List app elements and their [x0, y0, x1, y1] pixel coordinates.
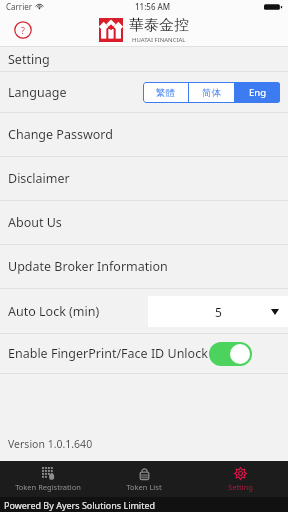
staticText: ?: [21, 24, 25, 36]
button[interactable]: Token List: [96, 461, 192, 497]
button[interactable]: 简体: [189, 82, 234, 103]
staticText: 華泰金控: [129, 16, 189, 35]
button[interactable]: 繁體: [143, 82, 188, 103]
staticText: About Us: [8, 214, 62, 231]
staticText: 简体: [202, 87, 221, 99]
staticText: Setting: [8, 51, 50, 68]
staticText: Language: [8, 84, 67, 101]
staticText: Update Broker Information: [8, 258, 168, 275]
staticText: Token List: [126, 482, 162, 492]
staticText: Disclaimer: [8, 170, 70, 187]
staticText: Version 1.0.1.640: [8, 437, 93, 451]
staticText: 5: [215, 304, 222, 320]
staticText: Enable FingerPrint/Face ID Unlock: [8, 345, 208, 362]
button[interactable]: Disclaimer: [0, 157, 288, 200]
button[interactable]: 5: [148, 296, 288, 327]
staticText: Eng: [249, 86, 266, 99]
button[interactable]: Update Broker Information: [0, 245, 288, 288]
staticText: Change Password: [8, 126, 113, 143]
button[interactable]: Token Registration: [0, 461, 96, 497]
staticText: 繁體: [156, 87, 175, 99]
staticText: Setting: [228, 482, 253, 492]
button[interactable]: Enable FingerPrint or Face ID Unlock: [209, 342, 252, 366]
button[interactable]: Help: [14, 21, 32, 39]
button[interactable]: Setting: [192, 461, 288, 497]
staticText: HUATAI FINANCIAL: [132, 36, 186, 44]
staticText: 11:56 AM: [135, 1, 171, 12]
button[interactable]: Eng: [235, 82, 280, 103]
staticText: Auto Lock (min): [8, 303, 100, 320]
staticText: Carrier: [6, 1, 33, 12]
staticText: Token Registration: [15, 482, 81, 492]
button[interactable]: About Us: [0, 201, 288, 244]
staticText: Powered By Ayers Solutions Limited: [4, 499, 156, 511]
button[interactable]: Change Password: [0, 113, 288, 156]
